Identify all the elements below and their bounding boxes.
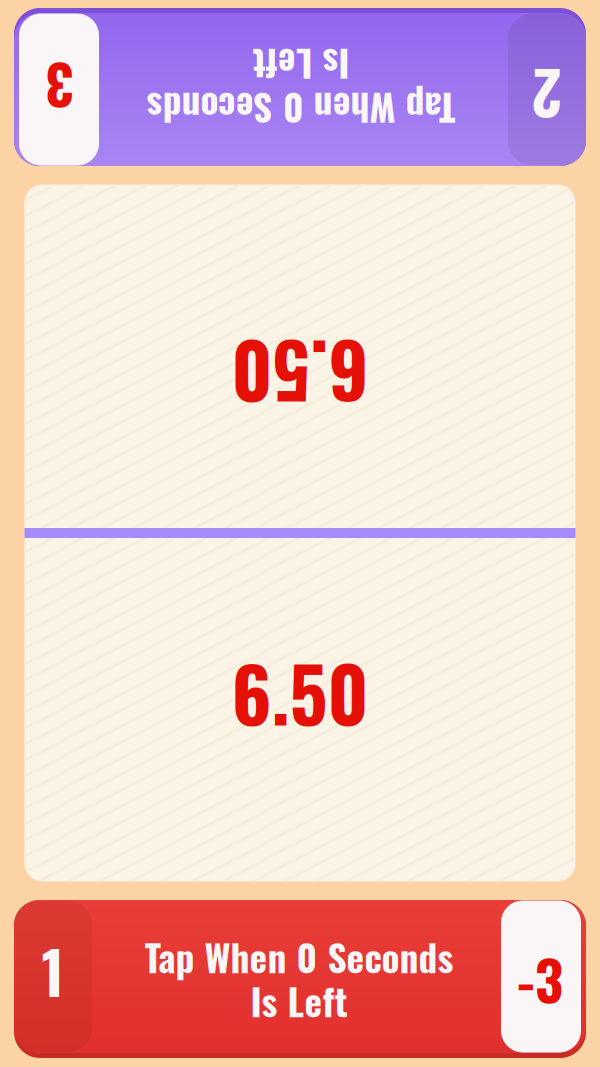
staticText: 3 <box>526 46 554 127</box>
staticText: 2 <box>38 35 68 122</box>
staticText: 6.50 <box>231 319 368 430</box>
staticText: Tap When 0 Seconds <box>144 929 453 984</box>
button[interactable]: 6.50 <box>24 184 575 528</box>
button[interactable]: 6.50 <box>24 538 575 881</box>
staticText: 1 <box>41 927 64 1014</box>
staticText: -3 <box>517 938 563 1019</box>
button[interactable]: 1 <box>14 900 586 1058</box>
staticText: Is Left <box>250 81 347 136</box>
staticText: Tap When 0 Seconds <box>144 37 453 92</box>
button[interactable]: 2 <box>14 8 586 166</box>
staticText: Is Left <box>250 973 347 1028</box>
staticText: 6.50 <box>231 636 368 747</box>
